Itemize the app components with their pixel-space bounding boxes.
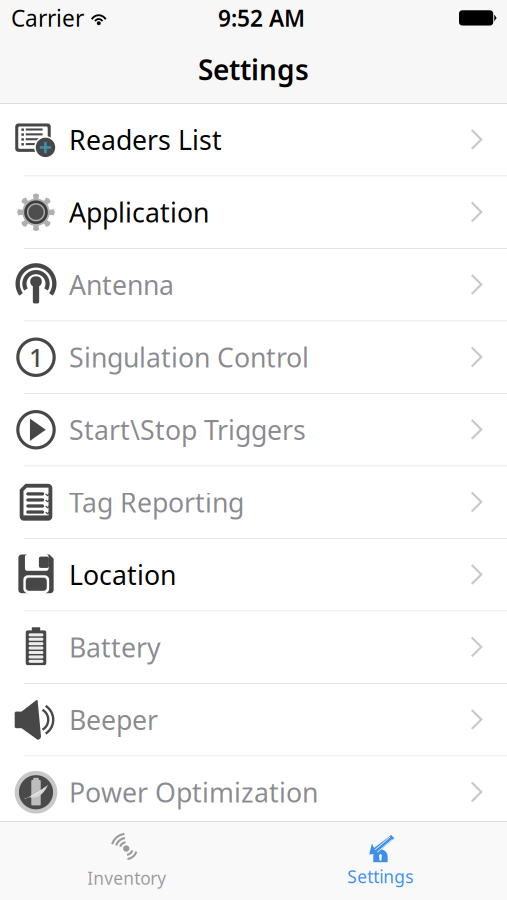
button[interactable]: Settings — [253, 822, 507, 900]
staticText: Beeper — [69, 702, 158, 737]
staticText: Power Optimization — [69, 774, 318, 810]
button[interactable]: Application — [0, 176, 507, 249]
button[interactable]: Location — [0, 539, 507, 611]
staticText: Singulation Control — [69, 339, 309, 375]
button[interactable]: Battery — [0, 611, 507, 684]
button[interactable]: Readers List — [0, 104, 507, 176]
button[interactable]: Inventory — [0, 822, 253, 900]
button[interactable]: 1 — [0, 321, 507, 394]
staticText: Battery — [69, 629, 161, 665]
staticText: Readers List — [69, 122, 222, 157]
staticText: Settings — [347, 865, 413, 888]
staticText: 1 — [29, 340, 43, 374]
staticText: 9:52 AM — [218, 3, 305, 33]
staticText: Carrier — [11, 3, 84, 33]
button[interactable]: Antenna — [0, 249, 507, 321]
staticText: Antenna — [69, 267, 174, 302]
button[interactable]: Tag Reporting — [0, 466, 507, 539]
staticText: Settings — [198, 51, 309, 88]
staticText: Start\Stop Triggers — [69, 412, 306, 447]
button[interactable]: Start\Stop Triggers — [0, 394, 507, 466]
staticText: Inventory — [87, 866, 166, 889]
button[interactable]: Beeper — [0, 684, 507, 756]
staticText: Location — [69, 557, 176, 592]
staticText: Application — [69, 194, 209, 230]
button[interactable]: Power Optimization — [0, 756, 507, 829]
staticText: Tag Reporting — [69, 484, 244, 520]
